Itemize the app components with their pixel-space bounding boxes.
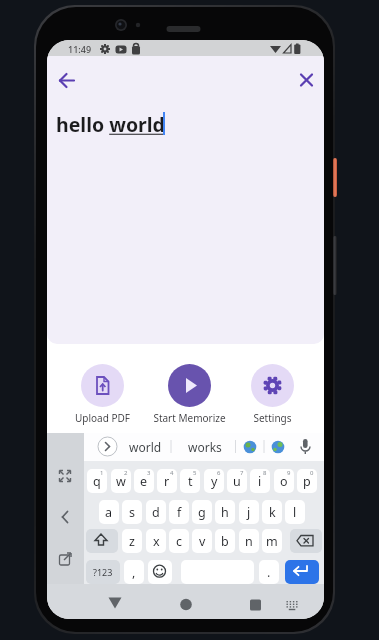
staticText: t xyxy=(188,473,193,490)
staticText: w xyxy=(116,473,126,490)
staticText: a xyxy=(105,504,113,521)
staticText: b xyxy=(221,533,229,550)
button[interactable] xyxy=(86,529,118,553)
button[interactable]: f xyxy=(169,500,189,524)
button[interactable]: w xyxy=(111,469,131,493)
staticText: Start Memorize xyxy=(153,411,226,425)
staticText: ?123 xyxy=(93,566,113,578)
staticText: works xyxy=(188,439,222,455)
button[interactable]: o xyxy=(274,469,294,493)
button[interactable]: , xyxy=(124,560,144,584)
staticText: , xyxy=(132,564,136,581)
button[interactable] xyxy=(53,59,81,87)
staticText: . xyxy=(267,564,271,581)
button[interactable]: k xyxy=(262,500,282,524)
button[interactable]: p xyxy=(297,469,317,493)
staticText: 5 xyxy=(193,469,197,477)
staticText: 8 xyxy=(263,469,267,477)
button[interactable]: j xyxy=(239,500,259,524)
staticText: 7 xyxy=(240,469,244,477)
button[interactable]: c xyxy=(169,529,189,553)
button[interactable]: i xyxy=(250,469,270,493)
staticText: z xyxy=(129,533,135,550)
staticText: p xyxy=(303,473,311,490)
button[interactable]: d xyxy=(146,500,166,524)
button[interactable]: e xyxy=(134,469,154,493)
staticText: 2 xyxy=(124,469,128,477)
button[interactable] xyxy=(251,364,294,407)
staticText: Settings xyxy=(253,411,292,425)
staticText: 4 xyxy=(170,469,174,477)
button[interactable]: x xyxy=(146,529,166,553)
staticText: 9 xyxy=(287,469,291,477)
staticText: world xyxy=(129,439,162,455)
button[interactable]: world xyxy=(121,433,169,461)
staticText: 6 xyxy=(217,469,221,477)
button[interactable]: . xyxy=(259,560,279,584)
button[interactable]: s xyxy=(122,500,142,524)
button[interactable]: u xyxy=(227,469,247,493)
button[interactable]: t xyxy=(180,469,200,493)
staticText: o xyxy=(280,473,288,490)
button[interactable] xyxy=(292,59,320,87)
staticText: 1 xyxy=(100,469,104,477)
staticText: hello world xyxy=(56,111,165,138)
button[interactable]: b xyxy=(215,529,235,553)
staticText: Upload PDF xyxy=(75,411,130,425)
button[interactable] xyxy=(174,590,198,614)
staticText: f xyxy=(177,504,182,521)
staticText: e xyxy=(140,473,148,490)
button[interactable]: ?123 xyxy=(86,560,120,584)
staticText: h xyxy=(221,504,229,521)
staticText: v xyxy=(199,533,206,550)
staticText: 11:49 xyxy=(68,43,92,55)
staticText: 3 xyxy=(147,469,151,477)
staticText: g xyxy=(198,504,206,521)
button[interactable]: g xyxy=(192,500,212,524)
staticText: 0 xyxy=(310,469,314,477)
button[interactable]: a xyxy=(99,500,119,524)
button[interactable]: works xyxy=(181,433,229,461)
button[interactable] xyxy=(285,560,319,584)
staticText: q xyxy=(93,473,101,490)
button[interactable]: q xyxy=(87,469,107,493)
staticText: s xyxy=(129,504,135,521)
button[interactable] xyxy=(290,529,322,553)
button[interactable] xyxy=(168,364,211,407)
staticText: l xyxy=(293,504,297,521)
button[interactable] xyxy=(81,364,124,407)
button[interactable]: l xyxy=(285,500,305,524)
staticText: d xyxy=(152,504,160,521)
button[interactable] xyxy=(148,560,172,584)
staticText: n xyxy=(245,533,253,550)
button[interactable]: r xyxy=(157,469,177,493)
staticText: u xyxy=(233,473,241,490)
staticText: x xyxy=(153,533,160,550)
staticText: k xyxy=(269,504,276,521)
button[interactable] xyxy=(243,590,267,614)
button[interactable]: h xyxy=(215,500,235,524)
button[interactable]: m xyxy=(262,529,282,553)
staticText: y xyxy=(211,473,218,490)
button[interactable]: n xyxy=(239,529,259,553)
staticText: c xyxy=(176,533,183,550)
button[interactable]: z xyxy=(122,529,142,553)
button[interactable]: v xyxy=(192,529,212,553)
button[interactable]: y xyxy=(204,469,224,493)
staticText: m xyxy=(266,533,278,550)
button[interactable] xyxy=(103,590,127,614)
staticText: i xyxy=(258,473,262,490)
button[interactable] xyxy=(98,437,117,456)
staticText: r xyxy=(164,473,170,490)
staticText: j xyxy=(247,504,251,521)
